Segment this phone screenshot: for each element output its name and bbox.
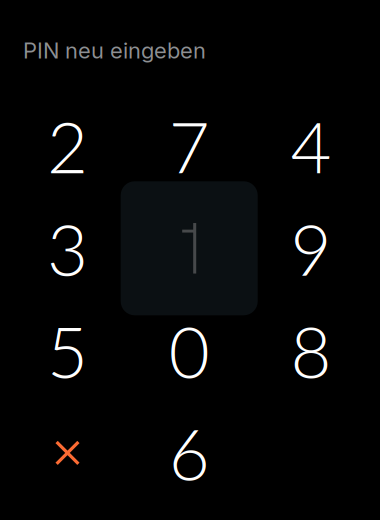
- staticText: 8: [290, 308, 331, 393]
- staticText: 4: [290, 104, 331, 188]
- button[interactable]: 1: [128, 197, 250, 299]
- staticText: 6: [169, 410, 210, 495]
- button[interactable]: 3: [7, 197, 128, 299]
- staticText: 5: [47, 308, 88, 393]
- button[interactable]: 4: [250, 95, 372, 197]
- staticText: 9: [290, 206, 331, 291]
- button[interactable]: 5: [7, 299, 128, 402]
- staticText: PIN neu eingeben: [23, 37, 206, 64]
- staticText: 0: [169, 308, 210, 393]
- button[interactable]: 6: [128, 402, 250, 504]
- staticText: 7: [169, 104, 210, 188]
- button[interactable]: 2: [7, 95, 128, 197]
- button[interactable]: 0: [128, 299, 250, 402]
- staticText: 3: [47, 206, 88, 291]
- button[interactable]: Löschen: [7, 402, 128, 504]
- button[interactable]: 7: [128, 95, 250, 197]
- button[interactable]: 9: [250, 197, 372, 299]
- button[interactable]: 8: [250, 299, 372, 402]
- staticText: 2: [47, 104, 88, 188]
